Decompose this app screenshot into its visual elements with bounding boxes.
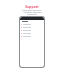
button[interactable] [20,26,44,29]
button[interactable] [20,17,44,20]
staticText: consectetur adipiscing e [23,11,42,13]
button[interactable] [20,23,44,26]
button[interactable] [20,29,44,32]
staticText: Support [25,4,39,9]
button[interactable] [20,32,44,35]
staticText: Lorem ipsum dolor sit am [22,9,42,11]
button[interactable] [20,35,44,38]
staticText: sed eiusmod [27,13,37,15]
